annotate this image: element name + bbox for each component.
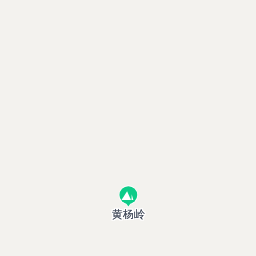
button[interactable]: 黄杨岭 [100, 182, 156, 224]
staticText: 黄杨岭 [113, 206, 146, 220]
staticText: 黄杨岭 [111, 207, 144, 221]
staticText: 黄杨岭 [111, 206, 144, 220]
staticText: 黄杨岭 [112, 207, 145, 221]
staticText: 黄杨岭 [113, 207, 146, 221]
staticText: 黄杨岭 [112, 206, 145, 220]
staticText: 黄杨岭 [112, 207, 145, 221]
staticText: 黄杨岭 [112, 208, 145, 222]
staticText: 黄杨岭 [111, 208, 144, 222]
staticText: 黄杨岭 [113, 208, 146, 222]
